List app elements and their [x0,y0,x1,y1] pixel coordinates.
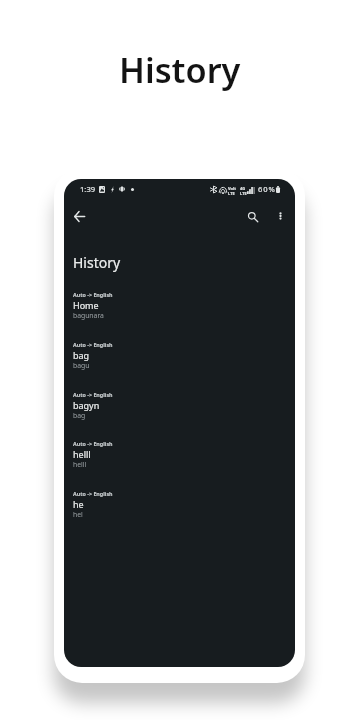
staticText: helll [73,460,87,469]
staticText: 60% [258,184,276,194]
staticText: Volt [228,186,236,191]
staticText: Auto -> English [73,391,113,398]
staticText: Home [73,299,99,311]
button[interactable]: Auto -> English [64,437,295,487]
button[interactable]: Auto -> English [64,338,295,388]
button[interactable]: Auto -> English [64,487,295,537]
staticText: bagyn [73,399,100,411]
button[interactable]: More options [268,204,292,228]
staticText: Auto -> English [73,440,113,447]
staticText: LTE [228,191,235,196]
staticText: hel [73,510,83,519]
staticText: bagu [73,361,90,370]
staticText: bagunara [73,311,104,320]
staticText: History [119,46,241,93]
button[interactable]: Search [241,205,265,229]
staticText: bag [73,349,90,361]
staticText: History [73,253,121,272]
staticText: bag [73,411,86,420]
staticText: Auto -> English [73,490,113,497]
button[interactable]: Back [67,204,91,228]
staticText: 4G [240,186,246,191]
staticText: Auto -> English [73,341,113,348]
button[interactable]: Auto -> English [64,288,295,338]
staticText: Auto -> English [73,291,113,298]
staticText: LTE [240,191,247,196]
staticText: 1:39 [80,184,96,194]
button[interactable]: Auto -> English [64,388,295,438]
staticText: he [73,498,84,510]
staticText: helll [73,448,91,460]
